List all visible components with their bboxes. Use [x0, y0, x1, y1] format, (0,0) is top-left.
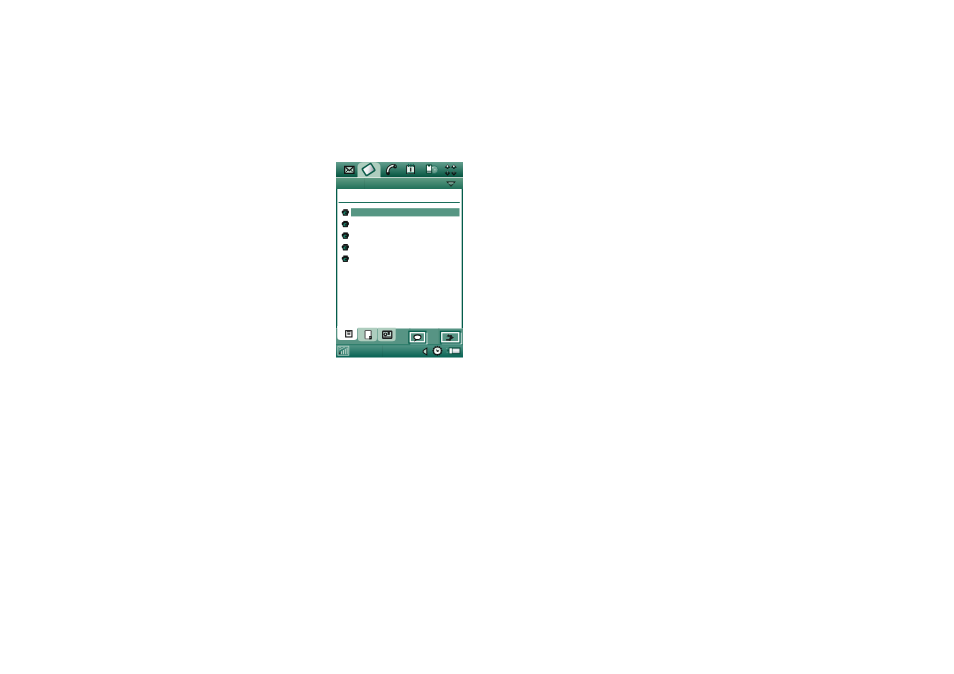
button[interactable]: Handheld device screen: [336, 162, 463, 358]
